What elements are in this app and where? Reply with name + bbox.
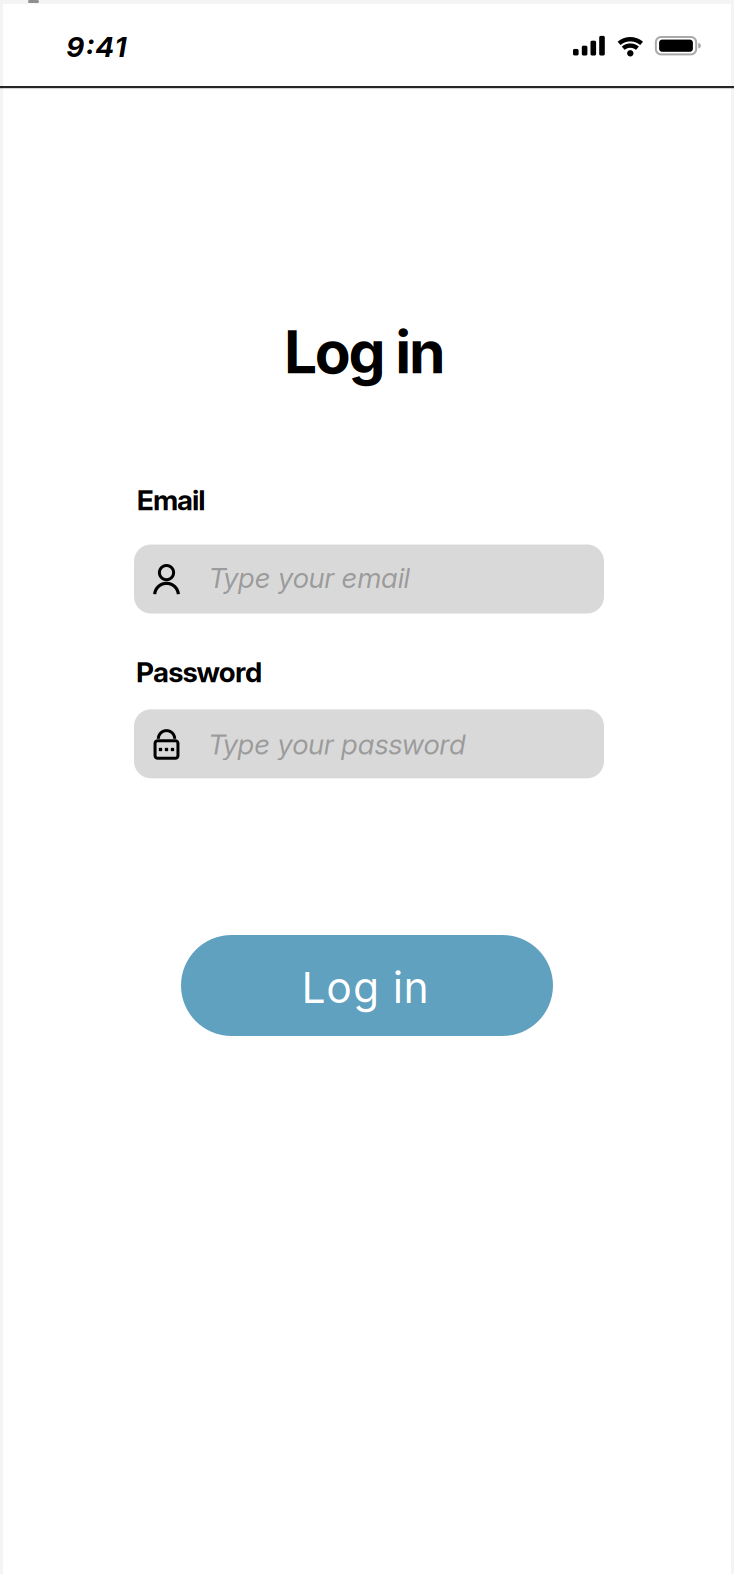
staticText: Type your password xyxy=(208,727,466,761)
button[interactable]: Password text field xyxy=(134,709,604,778)
staticText: Email xyxy=(137,483,205,517)
staticText: Type your email xyxy=(209,561,409,595)
button[interactable]: Email text field xyxy=(134,544,604,613)
staticText: Log in xyxy=(284,316,446,387)
staticText: Password xyxy=(136,655,262,689)
staticText: 9:41 xyxy=(66,30,127,64)
staticText: Log in xyxy=(301,962,428,1013)
button[interactable]: Log in xyxy=(181,935,553,1036)
